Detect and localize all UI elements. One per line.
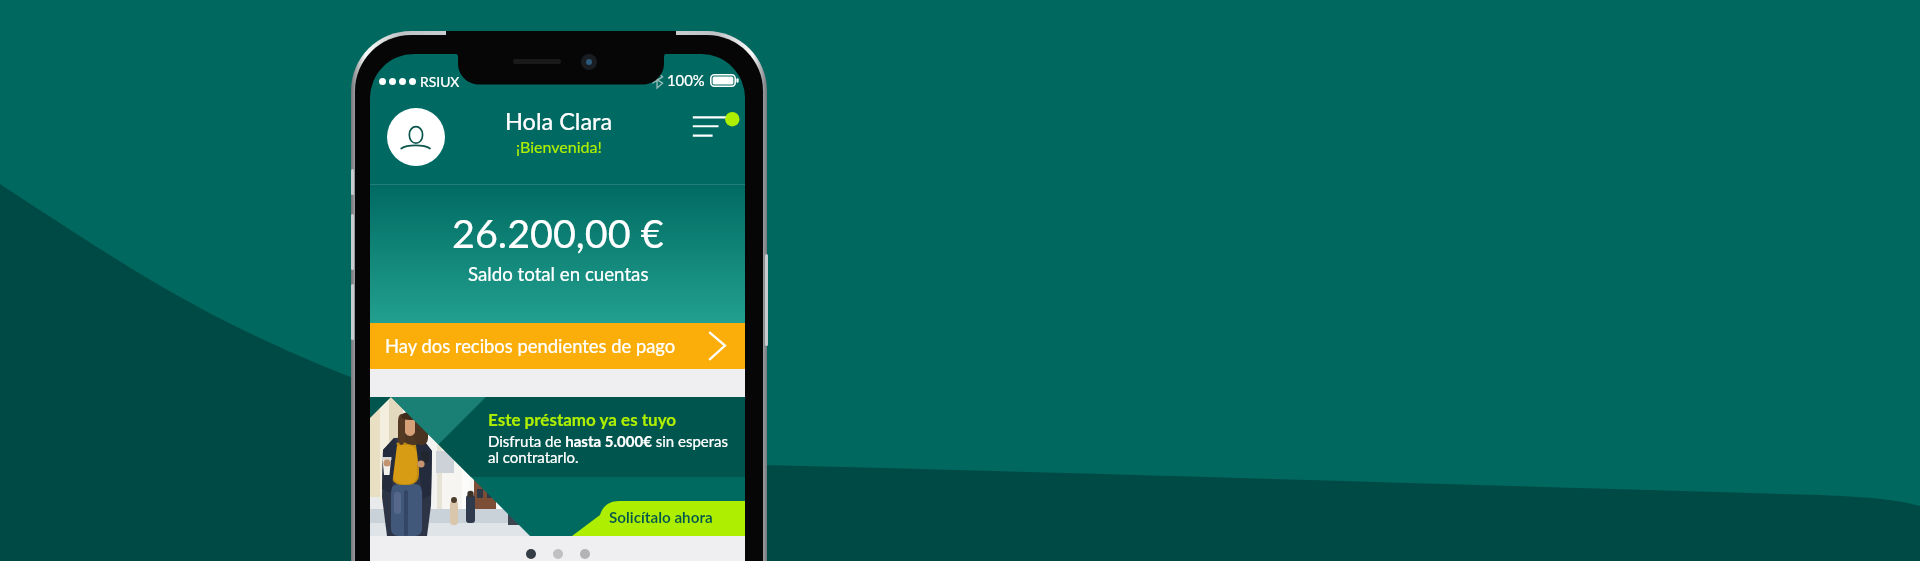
- button[interactable]: Solicítalo ahora: [572, 501, 745, 536]
- staticText: RSIUX: [420, 73, 460, 90]
- staticText: Este préstamo ya es tuyo: [488, 409, 677, 429]
- button[interactable]: Hay dos recibos pendientes de pago: [370, 323, 745, 369]
- staticText: Solicítalo ahora: [609, 508, 713, 526]
- staticText: Saldo total en cuentas: [468, 263, 649, 285]
- staticText: 26.200,00 €: [452, 209, 664, 256]
- staticText: Hola Clara: [505, 107, 613, 135]
- staticText: Disfruta de hasta 5.000€ sin esperas al …: [488, 432, 729, 466]
- button[interactable]: Este préstamo ya es tuyo: [370, 397, 745, 536]
- staticText: 100%: [667, 71, 705, 89]
- staticText: ¡Bienvenida!: [516, 137, 602, 156]
- button[interactable]: Perfil: [387, 108, 445, 166]
- staticText: Hay dos recibos pendientes de pago: [385, 335, 676, 357]
- button[interactable]: Menú: [688, 106, 738, 140]
